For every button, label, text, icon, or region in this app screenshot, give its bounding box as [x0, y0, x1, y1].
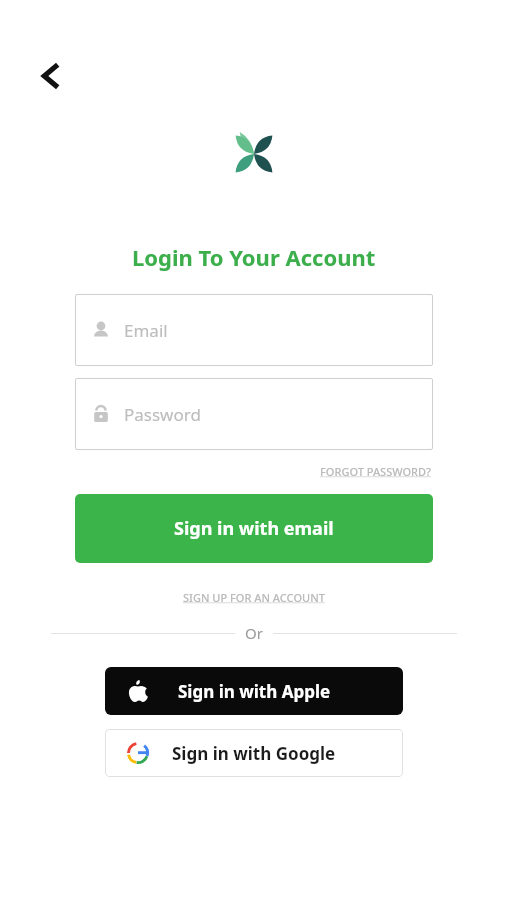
button[interactable]: Password	[75, 378, 433, 450]
button[interactable]: Email	[75, 294, 433, 366]
staticText: SIGN UP FOR AN ACCOUNT	[183, 590, 325, 605]
button[interactable]: SIGN UP FOR AN ACCOUNT	[181, 588, 327, 607]
button[interactable]: FORGOT PASSWORD?	[318, 462, 433, 481]
button[interactable]: Sign in with email	[75, 494, 433, 563]
staticText: Or	[245, 623, 263, 643]
staticText: Sign in with Apple	[178, 680, 331, 703]
staticText: Email	[124, 319, 168, 342]
button[interactable]: Back	[22, 48, 78, 104]
staticText: Sign in with email	[174, 516, 334, 541]
staticText: Password	[124, 403, 201, 426]
staticText: FORGOT PASSWORD?	[320, 464, 431, 479]
button[interactable]: Sign in with Apple	[105, 667, 403, 715]
staticText: Login To Your Account	[132, 242, 376, 272]
staticText: Sign in with Google	[172, 742, 336, 765]
button[interactable]: Sign in with Google	[105, 729, 403, 777]
